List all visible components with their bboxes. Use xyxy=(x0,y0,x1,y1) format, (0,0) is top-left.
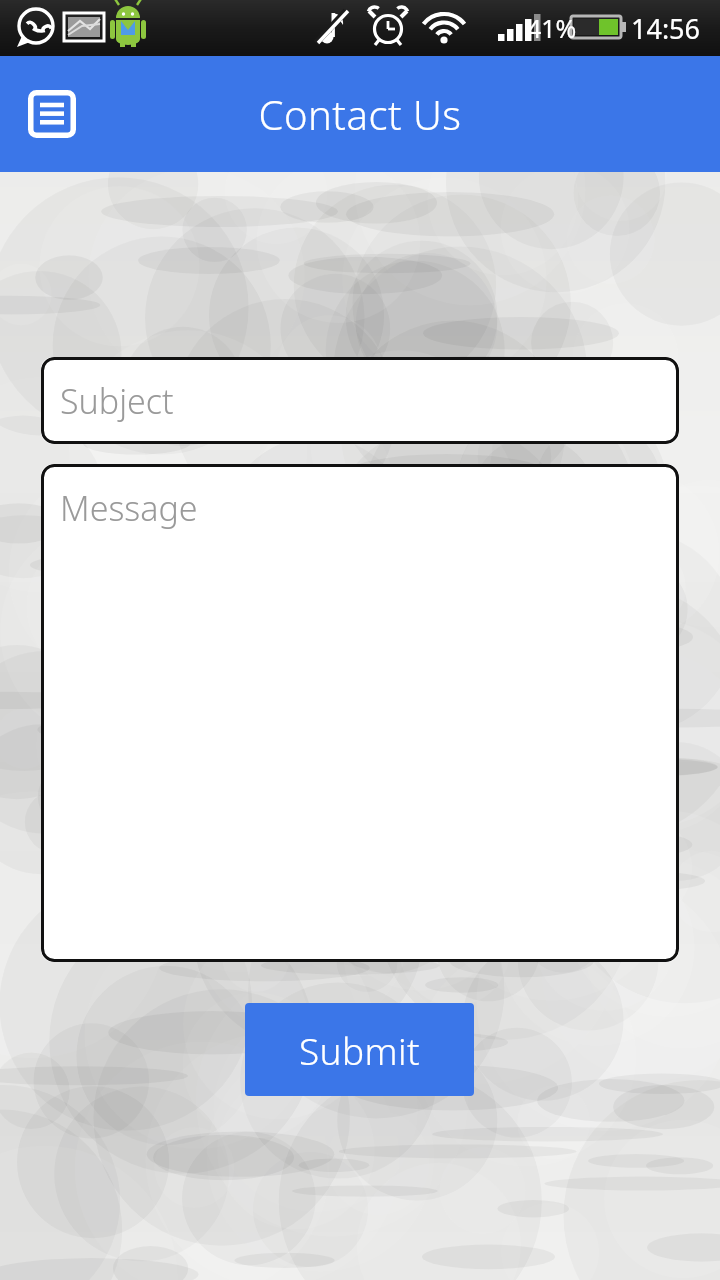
staticText: Submit xyxy=(299,1025,420,1075)
staticText: Subject xyxy=(60,378,174,424)
button[interactable]: Submit xyxy=(245,1003,474,1096)
staticText: Contact Us xyxy=(0,87,720,141)
button[interactable]: Open navigation menu xyxy=(16,78,88,150)
staticText: 41% xyxy=(527,11,577,45)
staticText: Message xyxy=(60,485,198,531)
button[interactable]: Message xyxy=(41,464,679,962)
button[interactable]: Subject xyxy=(41,357,679,444)
staticText: 14:56 xyxy=(631,10,701,47)
